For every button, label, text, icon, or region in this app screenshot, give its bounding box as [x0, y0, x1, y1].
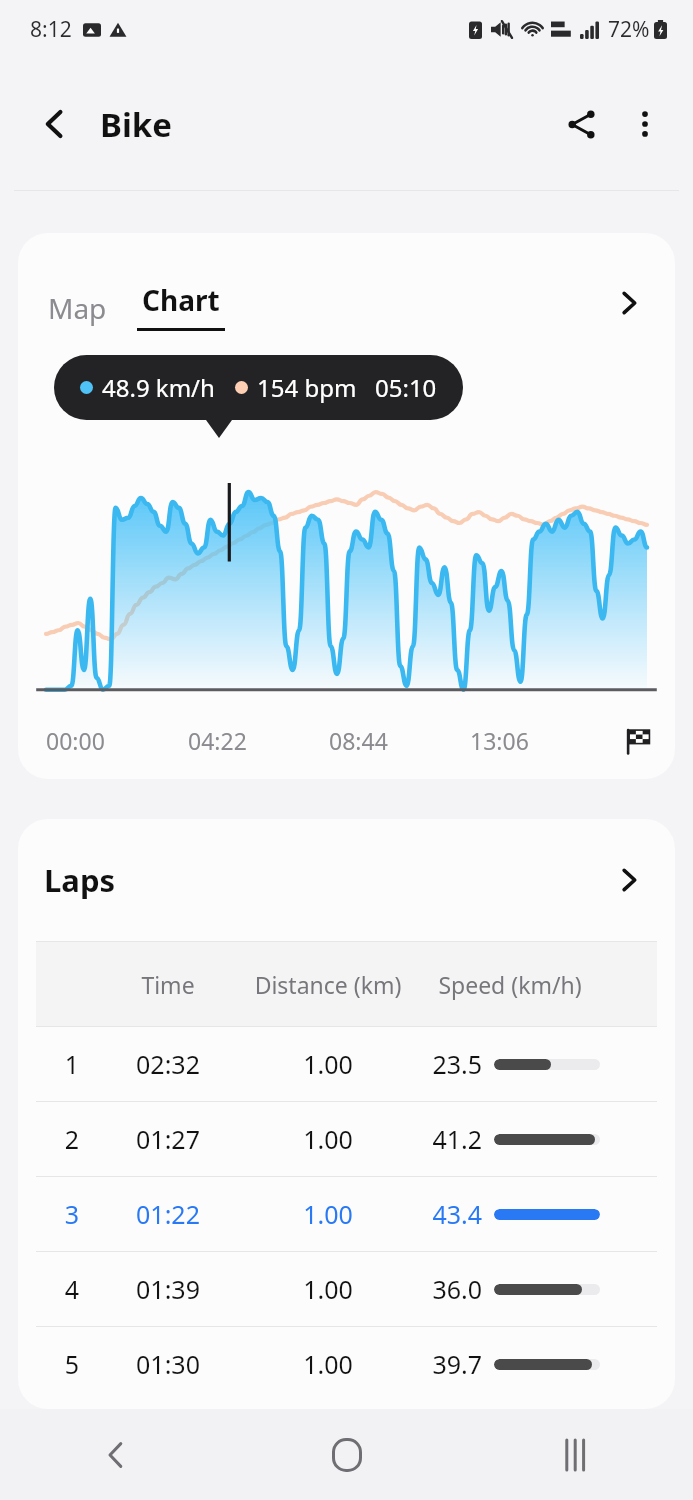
staticText: 2: [36, 1122, 108, 1156]
staticText: 1.00: [244, 1347, 412, 1381]
staticText: 43.4: [420, 1197, 482, 1231]
button[interactable]: Chart: [137, 277, 225, 331]
staticText: Map: [48, 289, 107, 327]
staticText: 00:00: [46, 725, 188, 756]
button[interactable]: Back: [0, 1409, 231, 1500]
staticText: 5: [36, 1347, 108, 1381]
button[interactable]: More options: [613, 92, 677, 156]
staticText: Time: [108, 969, 228, 1000]
staticText: Bike: [100, 102, 172, 147]
button[interactable]: Back: [24, 93, 86, 155]
staticText: 4: [36, 1272, 108, 1306]
staticText: 36.0: [420, 1272, 482, 1306]
button[interactable]: Open laps details: [601, 852, 657, 908]
staticText: 41.2: [420, 1122, 482, 1156]
staticText: 3: [36, 1197, 108, 1231]
staticText: 8:12: [30, 15, 72, 44]
staticText: 13:06: [470, 725, 611, 756]
button[interactable]: 4: [36, 1252, 657, 1326]
staticText: 23.5: [420, 1047, 482, 1081]
button[interactable]: Recent apps: [462, 1409, 693, 1500]
staticText: Speed (km/h): [420, 969, 600, 1000]
button[interactable]: Home: [231, 1409, 462, 1500]
staticText: 1.00: [244, 1197, 412, 1231]
staticText: 1: [36, 1047, 108, 1081]
button[interactable]: 5: [36, 1327, 657, 1401]
staticText: 01:30: [108, 1347, 228, 1381]
staticText: 1.00: [244, 1122, 412, 1156]
button[interactable]: Share: [549, 92, 613, 156]
staticText: 01:22: [108, 1197, 228, 1231]
staticText: 72%: [608, 15, 650, 44]
staticText: 1.00: [244, 1272, 412, 1306]
staticText: Distance (km): [244, 969, 412, 1000]
button[interactable]: 2: [36, 1102, 657, 1176]
button[interactable]: Map: [44, 285, 111, 331]
staticText: 01:27: [108, 1122, 228, 1156]
staticText: 01:39: [108, 1272, 228, 1306]
staticText: Chart: [142, 281, 220, 319]
staticText: 05:10: [375, 371, 437, 404]
staticText: 02:32: [108, 1047, 228, 1081]
staticText: 48.9 km/h: [102, 371, 215, 404]
button[interactable]: Open chart details: [601, 275, 657, 331]
staticText: 08:44: [329, 725, 470, 756]
staticText: 04:22: [188, 725, 329, 756]
staticText: 39.7: [420, 1347, 482, 1381]
staticText: 1.00: [244, 1047, 412, 1081]
button[interactable]: 1: [36, 1027, 657, 1101]
button[interactable]: 3: [36, 1177, 657, 1251]
staticText: 154 bpm: [257, 371, 357, 404]
staticText: Laps: [44, 859, 116, 901]
